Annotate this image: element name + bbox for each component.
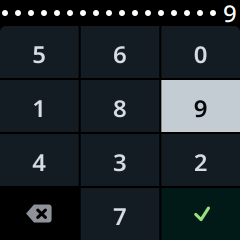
staticText: 2 [194,146,208,178]
button[interactable]: 2 [161,134,240,186]
button[interactable]: 9 [161,80,240,132]
staticText: 9 [194,92,208,124]
staticText: 5 [32,38,46,70]
button[interactable]: 8 [81,80,159,132]
staticText: 0 [194,38,208,70]
button[interactable]: Confirm [161,188,240,240]
button[interactable]: 5 [0,26,79,78]
button[interactable]: 7 [81,188,159,240]
button[interactable]: 1 [0,80,79,132]
button[interactable]: 6 [81,26,159,78]
staticText: 7 [113,200,127,232]
staticText: 3 [113,146,127,178]
staticText: 8 [113,92,127,124]
button[interactable]: 4 [0,134,79,186]
staticText: 4 [32,146,46,178]
button[interactable]: 0 [161,26,240,78]
staticText: 9 [223,0,237,29]
button[interactable]: Delete [0,188,79,240]
staticText: 6 [113,38,127,70]
button[interactable]: 3 [81,134,159,186]
staticText: 1 [32,92,46,124]
